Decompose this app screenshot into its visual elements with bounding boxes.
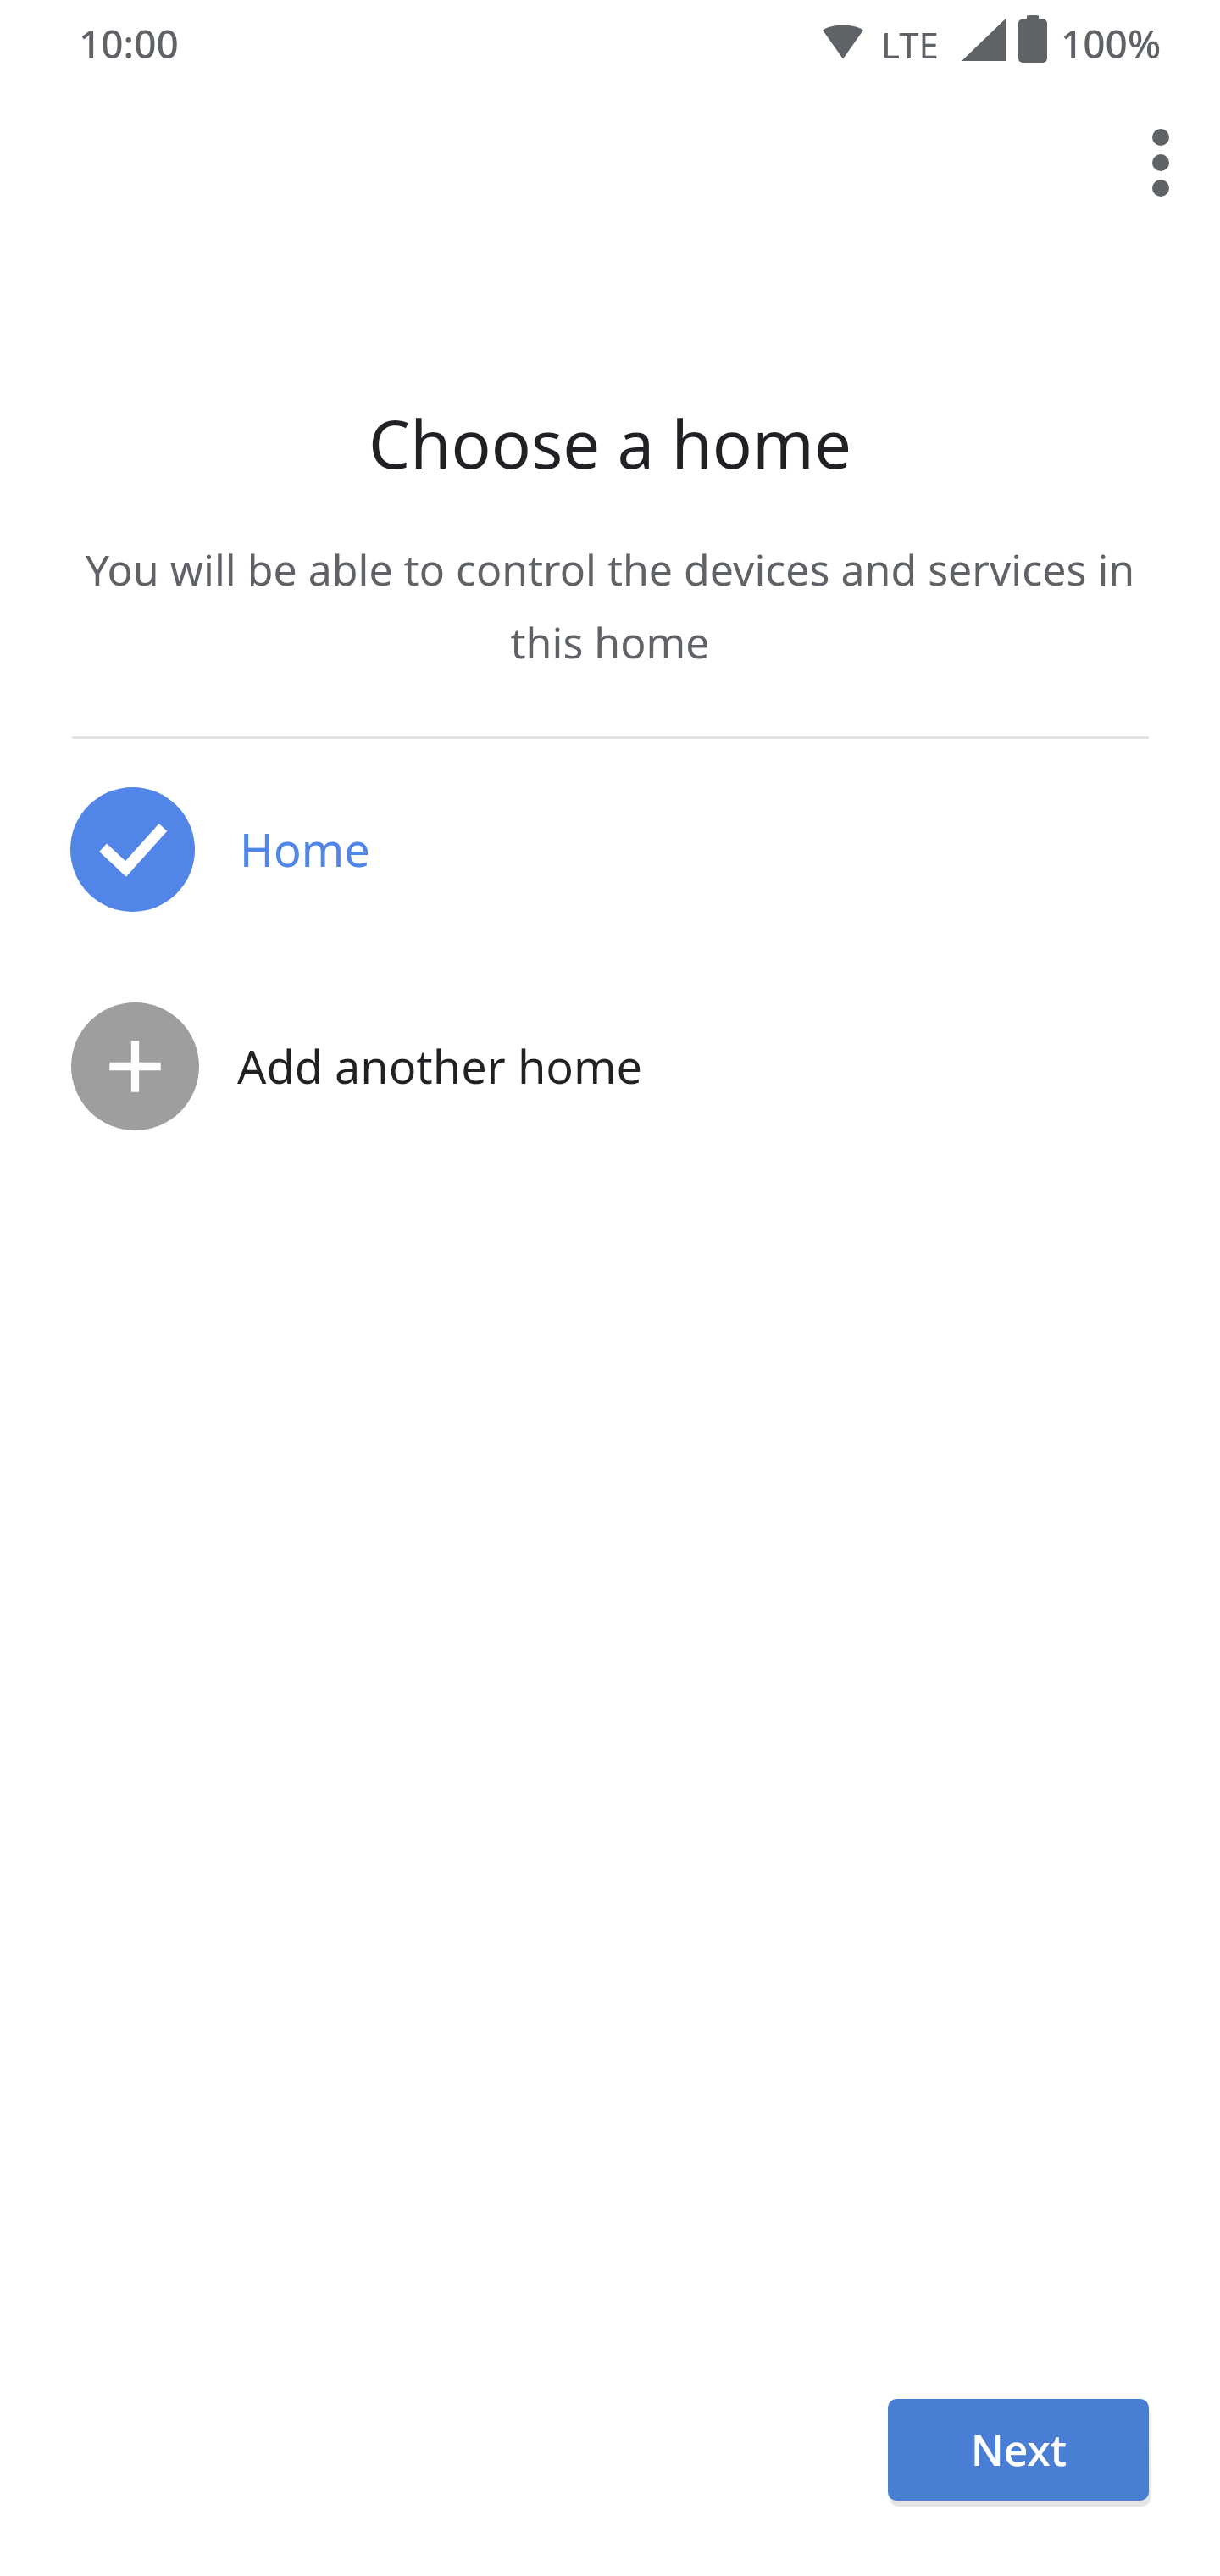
staticText: You will be able to control the devices … [58, 541, 1162, 671]
staticText: 10:00 [79, 17, 179, 70]
button[interactable]: Next [888, 2399, 1149, 2501]
staticText: Choose a home [0, 398, 1220, 488]
staticText: LTE [881, 20, 939, 69]
staticText: 100% [1061, 17, 1162, 70]
staticText: Next [971, 2421, 1067, 2479]
staticText: Add another home [237, 1035, 642, 1097]
button[interactable]: Home [0, 767, 1220, 931]
button[interactable]: More options [1101, 103, 1220, 222]
staticText: Home [240, 818, 370, 880]
button[interactable]: Add another home [0, 984, 1220, 1148]
